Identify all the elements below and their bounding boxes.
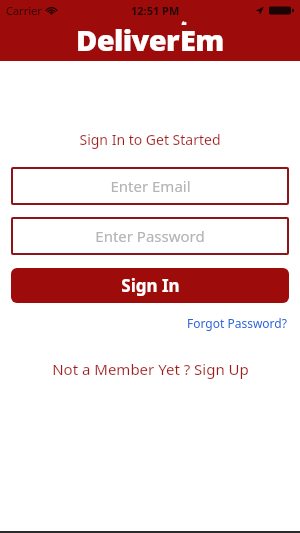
staticText: Sign In to Get Started [79, 130, 221, 149]
staticText: 12:51 PM [131, 3, 180, 18]
staticText: Sign In [121, 274, 180, 297]
button[interactable]: Enter Password [11, 217, 289, 255]
button[interactable]: Not a Member Yet ? Sign Up [46, 356, 255, 382]
button[interactable]: Sign In [11, 268, 289, 303]
staticText: Enter Password [95, 226, 205, 246]
staticText: Carrier [6, 3, 42, 18]
staticText: Deliver [76, 20, 180, 59]
staticText: Forgot Password? [187, 315, 287, 331]
button[interactable]: Enter Email [11, 167, 289, 205]
staticText: Em [180, 20, 224, 59]
staticText: Not a Member Yet ? Sign Up [52, 359, 249, 379]
staticText: Enter Email [110, 176, 191, 196]
button[interactable]: Forgot Password? [185, 313, 289, 333]
